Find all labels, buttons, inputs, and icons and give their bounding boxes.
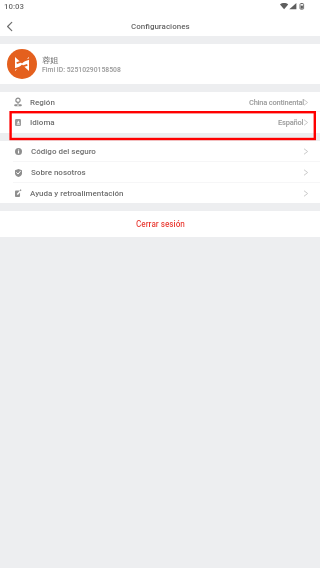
staticText: Sobre nosotros xyxy=(31,168,86,177)
button[interactable]: Cerrar sesión xyxy=(0,211,320,237)
button[interactable]: 蓉姐 xyxy=(0,44,320,84)
staticText: China continental xyxy=(249,98,304,107)
staticText: Español xyxy=(278,118,304,127)
staticText: 10:03 xyxy=(4,2,25,11)
button[interactable]: Idioma xyxy=(0,112,320,133)
staticText: Idioma xyxy=(30,118,55,127)
staticText: 蓉姐 xyxy=(42,55,59,65)
staticText: Configuraciones xyxy=(131,22,190,31)
button[interactable]: Sobre nosotros xyxy=(0,162,320,183)
button[interactable]: Región xyxy=(0,92,320,112)
button[interactable]: Código del seguro xyxy=(0,141,320,162)
staticText: Fimi ID: 52510290158508 xyxy=(42,66,121,74)
staticText: Ayuda y retroalimentación xyxy=(30,189,124,198)
staticText: Cerrar sesión xyxy=(136,219,185,229)
staticText: Código del seguro xyxy=(31,147,96,156)
staticText: Región xyxy=(30,98,55,107)
button[interactable]: Ayuda y retroalimentación xyxy=(0,183,320,203)
button[interactable]: Back xyxy=(0,17,19,36)
